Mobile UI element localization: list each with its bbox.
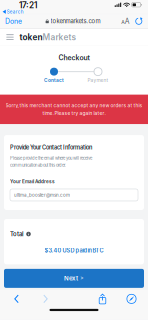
staticText: ultima_booster@msn.com <box>14 192 70 198</box>
button[interactable]: ultima_booster@msn.com <box>10 189 138 201</box>
staticText: A <box>125 17 130 25</box>
button[interactable]: Open in Safari <box>117 292 146 306</box>
staticText: 17:21 <box>19 0 37 10</box>
staticText: Your Email Address <box>10 179 55 184</box>
staticText: > <box>80 275 84 282</box>
staticText: Payment <box>87 77 108 83</box>
staticText: time. Please try again later. <box>42 110 105 116</box>
button[interactable]: Forward <box>31 292 60 306</box>
button[interactable]: Back <box>2 292 31 306</box>
staticText: Next <box>64 275 78 282</box>
button[interactable]: Text size options <box>119 14 132 28</box>
staticText: token <box>19 32 42 42</box>
staticText: Checkout <box>58 54 89 62</box>
button[interactable]: Share <box>88 292 117 306</box>
staticText: Done <box>5 17 22 25</box>
staticText: A <box>121 19 124 25</box>
staticText: Total <box>10 230 24 238</box>
button[interactable]: Next <box>4 269 144 288</box>
button[interactable]: Menu <box>5 29 15 46</box>
staticText: Sorry, this merchant cannot accept any n… <box>5 103 142 108</box>
staticText: communication about this order. <box>10 163 66 168</box>
button[interactable]: Done <box>0 14 27 28</box>
staticText: $3.40 USD paid in BTC <box>44 247 103 254</box>
staticText: Contact <box>44 77 64 83</box>
staticText: Search <box>7 9 24 14</box>
staticText: Provide Your Contact Information <box>10 144 92 151</box>
button[interactable]: token <box>19 29 76 46</box>
staticText: tokenmarkets.com <box>50 18 100 25</box>
staticText: Please provide the email where you will … <box>10 156 92 161</box>
staticText: Markets <box>42 32 76 42</box>
button[interactable]: Reload page <box>132 14 146 28</box>
